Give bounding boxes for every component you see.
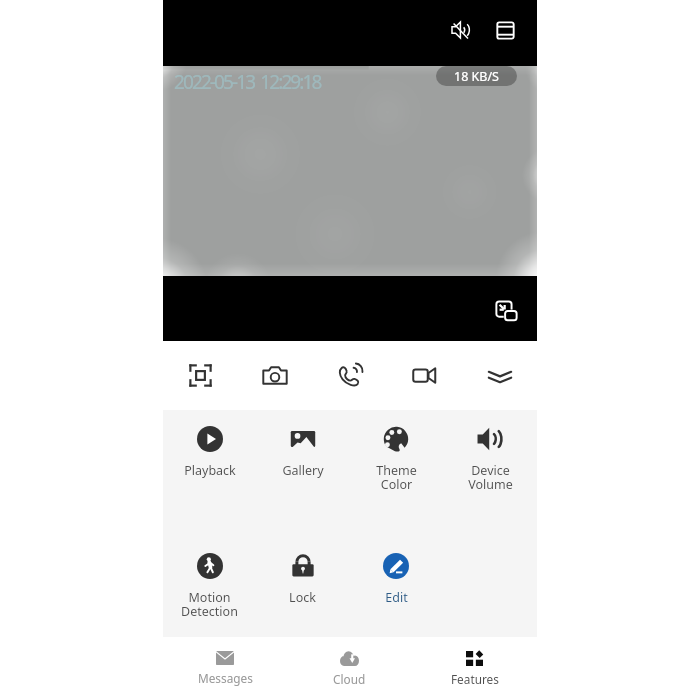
button[interactable]: Voice call — [312, 341, 387, 410]
button[interactable]: Playback — [163, 410, 256, 537]
staticText: Messages — [198, 670, 253, 686]
button[interactable]: Edit — [349, 537, 443, 637]
staticText: Playback — [184, 462, 236, 479]
staticText: 18 KB/S — [454, 68, 499, 85]
button[interactable]: Cloud — [287, 637, 412, 700]
button[interactable]: Full screen — [163, 341, 237, 410]
button[interactable]: Lock — [256, 537, 349, 637]
staticText: Lock — [289, 589, 316, 606]
staticText: Gallery — [282, 462, 324, 479]
button[interactable]: Picture in picture — [485, 289, 527, 331]
button[interactable]: Mute — [439, 8, 483, 52]
button[interactable]: Record video — [387, 341, 462, 410]
staticText: Motion Detection — [181, 589, 238, 620]
button[interactable]: Theme Color — [349, 410, 443, 537]
button[interactable]: Motion Detection — [163, 537, 256, 637]
staticText: Theme Color — [376, 462, 417, 493]
staticText: Features — [451, 671, 499, 687]
staticText: Device Volume — [468, 462, 513, 493]
staticText: Cloud — [333, 671, 366, 687]
button[interactable]: Gallery — [256, 410, 349, 537]
button[interactable]: Messages — [163, 637, 287, 700]
button[interactable]: Snapshot — [237, 341, 312, 410]
button[interactable]: Features — [412, 637, 537, 700]
staticText: 2022-05-13 12:29:18 — [174, 69, 321, 95]
button[interactable]: Device Volume — [443, 410, 537, 537]
staticText: Edit — [385, 589, 408, 606]
button[interactable]: More — [462, 341, 537, 410]
button[interactable]: Split screen layout — [483, 8, 527, 52]
